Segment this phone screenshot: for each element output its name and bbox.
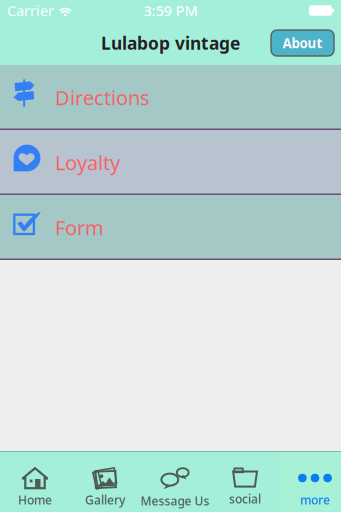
button[interactable]: Directions [0, 65, 341, 130]
staticText: Home [18, 492, 52, 508]
staticText: social [229, 491, 261, 507]
staticText: 3:59 PM [143, 1, 197, 20]
staticText: About [282, 34, 322, 52]
button[interactable]: more [280, 453, 341, 510]
button[interactable]: Loyalty [0, 130, 341, 195]
button[interactable]: social [210, 453, 280, 510]
button[interactable]: About [271, 30, 334, 56]
button[interactable]: Message Us [140, 453, 210, 510]
button[interactable]: Home [0, 453, 70, 510]
staticText: Carrier [7, 1, 54, 20]
staticText: Message Us [140, 493, 209, 509]
button[interactable]: Gallery [70, 453, 140, 510]
staticText: Form [55, 214, 104, 241]
button[interactable]: Form [0, 195, 341, 260]
staticText: Loyalty [55, 149, 120, 176]
staticText: Lulabop vintage [101, 31, 240, 54]
staticText: more [300, 492, 330, 508]
staticText: Gallery [85, 492, 125, 508]
staticText: Directions [55, 84, 150, 111]
